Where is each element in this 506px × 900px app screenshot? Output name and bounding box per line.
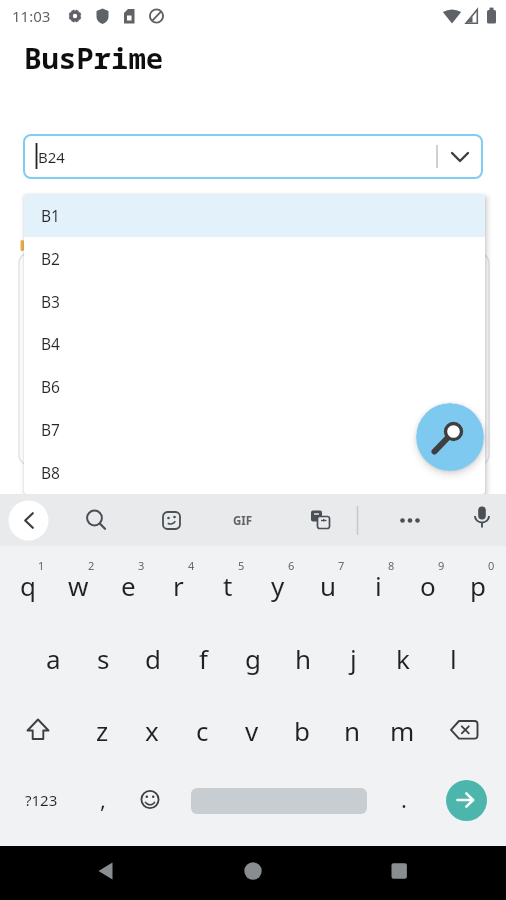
button[interactable]: n: [327, 700, 377, 760]
staticText: o: [420, 568, 436, 603]
button[interactable]: B8: [24, 451, 485, 494]
button[interactable]: j: [328, 628, 378, 688]
staticText: u: [320, 568, 337, 603]
button[interactable]: [133, 780, 173, 820]
staticText: B7: [41, 419, 60, 440]
button[interactable]: i: [353, 555, 403, 615]
staticText: 0: [488, 558, 495, 573]
button[interactable]: [441, 702, 491, 758]
button[interactable]: B7: [24, 408, 485, 451]
staticText: .: [401, 784, 407, 814]
button[interactable]: [298, 499, 342, 543]
button[interactable]: w: [53, 555, 103, 615]
button[interactable]: [446, 780, 487, 821]
staticText: p: [470, 568, 486, 603]
staticText: 8: [388, 558, 395, 573]
button[interactable]: z: [77, 700, 127, 760]
button[interactable]: t: [203, 555, 253, 615]
button[interactable]: [150, 499, 194, 543]
staticText: n: [344, 713, 361, 748]
staticText: f: [199, 641, 208, 676]
staticText: x: [145, 713, 159, 748]
button[interactable]: h: [278, 628, 328, 688]
button[interactable]: [416, 403, 484, 471]
button[interactable]: [388, 499, 432, 543]
staticText: 1: [38, 558, 45, 573]
staticText: b: [294, 713, 310, 748]
button[interactable]: x: [127, 700, 177, 760]
button[interactable]: B24: [23, 134, 483, 179]
staticText: B6: [41, 376, 60, 397]
staticText: q: [20, 568, 36, 603]
staticText: h: [295, 641, 312, 676]
button[interactable]: B6: [24, 365, 485, 408]
button[interactable]: f: [178, 628, 228, 688]
button[interactable]: ,: [83, 779, 123, 819]
staticText: B2: [41, 248, 60, 269]
button[interactable]: B1: [24, 194, 485, 237]
staticText: BusPrime: [24, 38, 164, 77]
staticText: g: [245, 641, 261, 676]
staticText: t: [223, 568, 233, 603]
button[interactable]: a: [28, 628, 78, 688]
staticText: c: [196, 713, 209, 748]
staticText: ,: [100, 784, 106, 814]
staticText: 6: [288, 558, 295, 573]
button[interactable]: [221, 499, 265, 543]
button[interactable]: k: [378, 628, 428, 688]
button[interactable]: s: [78, 628, 128, 688]
staticText: d: [145, 641, 161, 676]
button[interactable]: B4: [24, 322, 485, 365]
staticText: 11:03: [12, 6, 51, 26]
button[interactable]: l: [428, 628, 478, 688]
button[interactable]: q: [3, 555, 53, 615]
button[interactable]: b: [277, 700, 327, 760]
button[interactable]: [233, 851, 273, 891]
button[interactable]: u: [303, 555, 353, 615]
staticText: B1: [41, 205, 60, 226]
staticText: 7: [338, 558, 345, 573]
staticText: l: [450, 641, 457, 676]
staticText: r: [173, 568, 184, 603]
button[interactable]: ?123: [11, 780, 71, 820]
button[interactable]: [460, 499, 504, 543]
button[interactable]: B3: [24, 280, 485, 323]
button[interactable]: d: [128, 628, 178, 688]
staticText: k: [396, 641, 410, 676]
staticText: B4: [41, 333, 60, 354]
staticText: e: [121, 568, 136, 603]
button[interactable]: m: [377, 700, 427, 760]
staticText: j: [350, 641, 357, 676]
button[interactable]: .: [384, 779, 424, 819]
button[interactable]: o: [403, 555, 453, 615]
button[interactable]: y: [253, 555, 303, 615]
button[interactable]: B2: [24, 237, 485, 280]
button[interactable]: g: [228, 628, 278, 688]
button[interactable]: [14, 702, 64, 758]
staticText: v: [245, 713, 259, 748]
button[interactable]: c: [177, 700, 227, 760]
staticText: z: [96, 713, 109, 748]
button[interactable]: r: [153, 555, 203, 615]
button[interactable]: [85, 851, 125, 891]
staticText: i: [375, 568, 382, 603]
button[interactable]: [74, 499, 118, 543]
button[interactable]: [7, 499, 51, 543]
button[interactable]: p: [453, 555, 503, 615]
staticText: 3: [138, 558, 145, 573]
staticText: B8: [41, 462, 60, 483]
button[interactable]: [191, 788, 367, 814]
staticText: B3: [41, 291, 60, 312]
staticText: w: [68, 568, 89, 603]
staticText: 5: [238, 558, 245, 573]
staticText: ?123: [25, 790, 58, 810]
staticText: s: [97, 641, 110, 676]
staticText: GIF: [233, 513, 253, 529]
button[interactable]: [379, 851, 419, 891]
staticText: 4: [188, 558, 195, 573]
staticText: m: [390, 713, 415, 748]
button[interactable]: e: [103, 555, 153, 615]
staticText: 9: [438, 558, 445, 573]
staticText: B24: [38, 147, 65, 167]
button[interactable]: v: [227, 700, 277, 760]
